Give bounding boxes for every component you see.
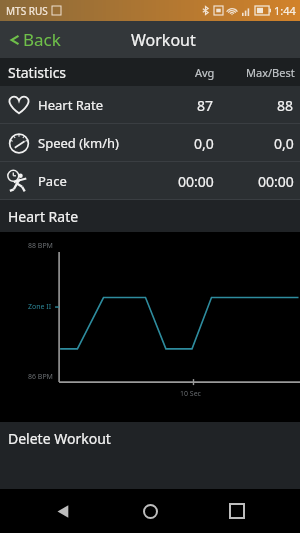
staticText: Statistics <box>8 63 67 82</box>
staticText: 86 BPM <box>28 372 53 382</box>
staticText: Max/Best <box>246 65 295 80</box>
staticText: MTS RUS <box>6 4 48 18</box>
button[interactable]: Speed (km/h) <box>0 124 300 162</box>
staticText: 10 Sec <box>180 389 201 399</box>
staticText: Avg <box>195 65 215 80</box>
staticText: Speed (km/h) <box>38 134 119 152</box>
staticText: 0,0 <box>274 134 294 153</box>
staticText: Back <box>23 28 61 51</box>
staticText: Heart Rate <box>38 96 104 114</box>
button[interactable]: Heart Rate <box>0 86 300 124</box>
button[interactable]: Back <box>0 22 71 57</box>
staticText: Delete Workout <box>8 429 111 448</box>
staticText: 87 <box>197 96 214 115</box>
staticText: 00:00 <box>258 172 294 191</box>
button[interactable]: Recent apps <box>213 489 261 533</box>
staticText: Pace <box>38 172 67 190</box>
staticText: 0,0 <box>194 134 214 153</box>
button[interactable]: Back <box>39 489 87 533</box>
staticText: 88 <box>277 96 294 115</box>
staticText: Zone II <box>28 302 52 312</box>
staticText: 88 BPM <box>28 241 53 251</box>
staticText: Workout <box>131 29 196 51</box>
button[interactable]: Home <box>126 489 174 533</box>
button[interactable]: Pace <box>0 162 300 200</box>
button[interactable]: Delete Workout <box>0 422 300 455</box>
staticText: 00:00 <box>178 172 214 191</box>
staticText: 1:44 <box>274 3 296 18</box>
staticText: Heart Rate <box>8 207 79 226</box>
